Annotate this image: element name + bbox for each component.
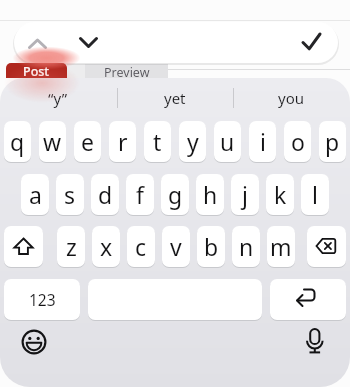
- button[interactable]: [73, 27, 104, 58]
- button[interactable]: [4, 226, 43, 267]
- staticText: x: [100, 231, 113, 262]
- staticText: q: [10, 126, 25, 157]
- button[interactable]: 123: [4, 279, 80, 320]
- button[interactable]: [296, 27, 327, 58]
- button[interactable]: yet: [117, 84, 233, 112]
- button[interactable]: “y”: [0, 84, 116, 112]
- staticText: i: [260, 126, 266, 157]
- staticText: h: [203, 179, 218, 210]
- button[interactable]: g: [161, 174, 189, 215]
- button[interactable]: l: [301, 174, 329, 215]
- button[interactable]: Post: [6, 63, 67, 78]
- staticText: b: [204, 231, 219, 262]
- button[interactable]: f: [126, 174, 154, 215]
- staticText: yet: [164, 88, 186, 108]
- button[interactable]: q: [4, 121, 31, 162]
- staticText: n: [239, 231, 254, 262]
- button[interactable]: z: [57, 226, 85, 267]
- button[interactable]: you: [233, 84, 349, 112]
- staticText: a: [29, 179, 42, 210]
- button[interactable]: r: [109, 121, 136, 162]
- staticText: d: [98, 179, 113, 210]
- button[interactable]: k: [266, 174, 294, 215]
- button[interactable]: b: [197, 226, 225, 267]
- button[interactable]: [307, 226, 346, 267]
- staticText: k: [274, 179, 287, 210]
- staticText: u: [220, 126, 235, 157]
- button[interactable]: p: [319, 121, 346, 162]
- staticText: g: [168, 179, 183, 210]
- button[interactable]: Preview: [85, 64, 168, 78]
- button[interactable]: c: [127, 226, 155, 267]
- button[interactable]: j: [231, 174, 259, 215]
- staticText: Preview: [104, 64, 150, 78]
- staticText: e: [81, 126, 94, 157]
- button[interactable]: [270, 279, 346, 320]
- button[interactable]: x: [92, 226, 120, 267]
- staticText: j: [242, 179, 248, 210]
- button[interactable]: v: [162, 226, 190, 267]
- staticText: w: [43, 126, 62, 157]
- button[interactable]: n: [232, 226, 260, 267]
- staticText: m: [270, 231, 292, 262]
- staticText: r: [118, 126, 128, 157]
- button[interactable]: y: [179, 121, 206, 162]
- staticText: s: [64, 179, 76, 210]
- staticText: z: [66, 231, 77, 262]
- staticText: p: [325, 126, 340, 157]
- button[interactable]: a: [21, 174, 49, 215]
- button[interactable]: [302, 326, 328, 356]
- button[interactable]: i: [249, 121, 276, 162]
- staticText: c: [135, 231, 147, 262]
- button[interactable]: e: [74, 121, 101, 162]
- staticText: f: [136, 179, 144, 210]
- staticText: v: [170, 231, 182, 262]
- button[interactable]: [22, 27, 53, 58]
- staticText: Post: [23, 63, 50, 78]
- button[interactable]: [20, 328, 48, 356]
- staticText: 123: [29, 289, 56, 310]
- button[interactable]: o: [284, 121, 311, 162]
- button[interactable]: s: [56, 174, 84, 215]
- staticText: l: [312, 179, 318, 210]
- button[interactable]: t: [144, 121, 171, 162]
- button[interactable]: w: [39, 121, 66, 162]
- staticText: o: [291, 126, 305, 157]
- staticText: “y”: [48, 88, 68, 108]
- staticText: you: [278, 88, 304, 108]
- staticText: y: [187, 126, 199, 157]
- button[interactable]: d: [91, 174, 119, 215]
- button[interactable]: u: [214, 121, 241, 162]
- button[interactable]: m: [267, 226, 295, 267]
- button[interactable]: h: [196, 174, 224, 215]
- staticText: t: [153, 126, 162, 157]
